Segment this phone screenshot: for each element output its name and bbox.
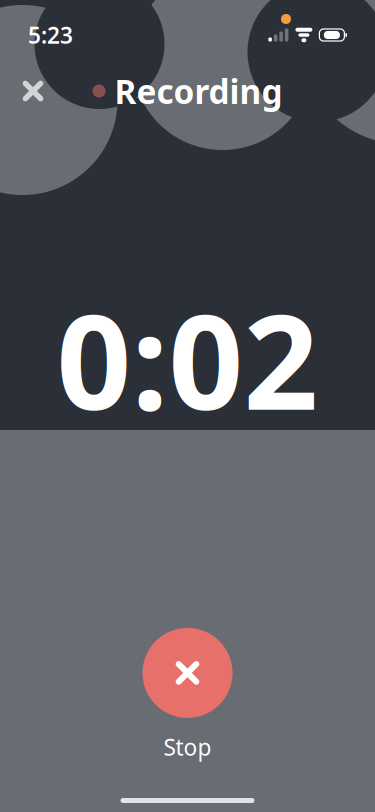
staticText: 5:23 — [28, 20, 73, 50]
staticText: 0:02 — [56, 272, 318, 446]
button[interactable]: Stop — [116, 618, 258, 772]
button[interactable]: Close — [6, 64, 60, 118]
staticText: Recording — [114, 69, 282, 113]
staticText: Stop — [163, 732, 211, 762]
